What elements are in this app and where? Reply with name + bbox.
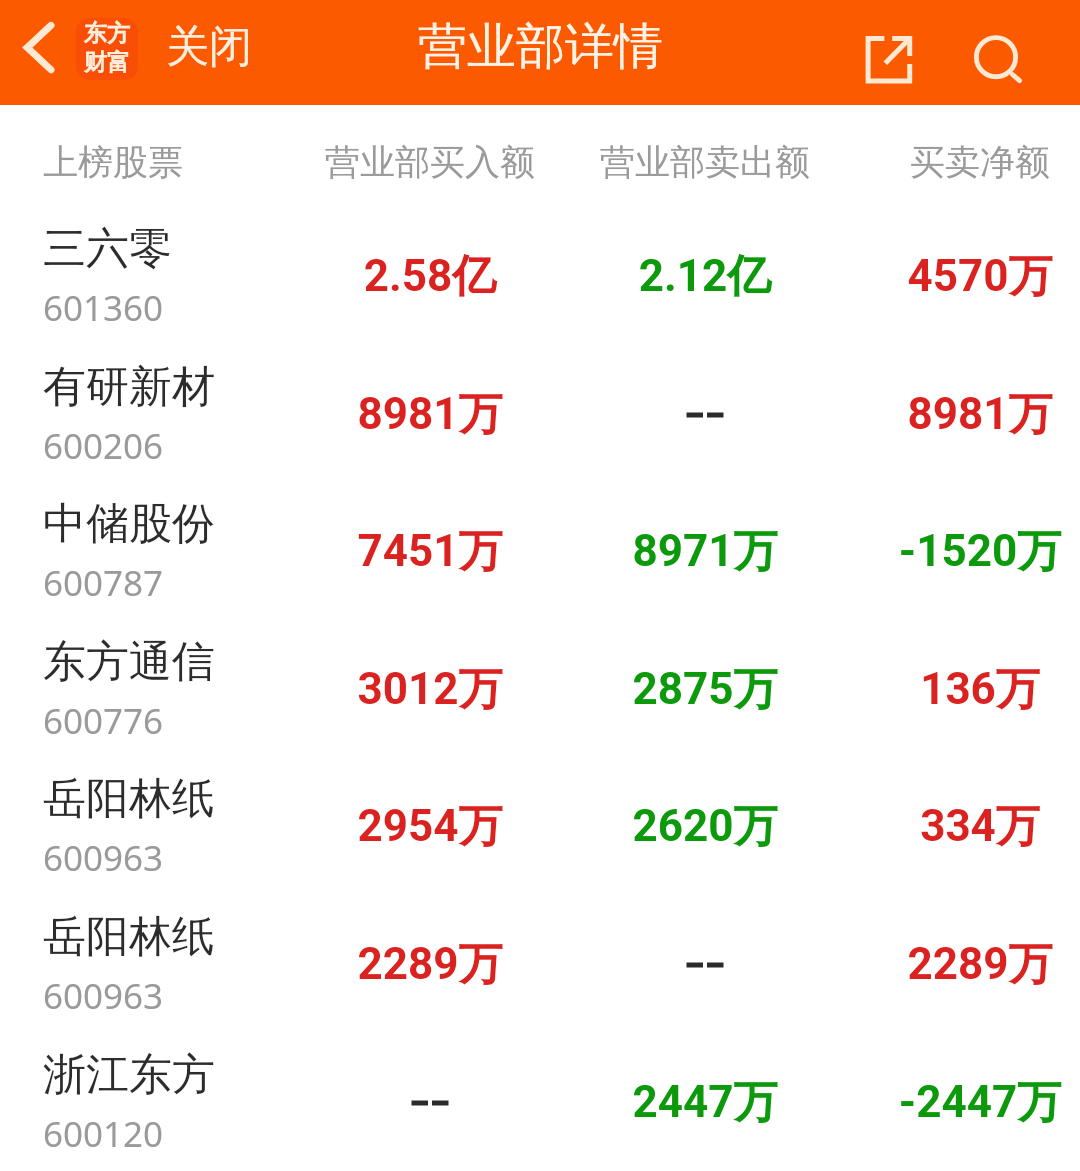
staticText: 上榜股票 [43,140,183,184]
staticText: 岳阳林纸 [43,772,215,826]
button[interactable]: 岳阳林纸 [0,755,1080,892]
staticText: 600963 [43,972,164,1020]
staticText: 买卖净额 [840,140,1080,184]
button[interactable]: Share [852,23,926,96]
button[interactable]: 关闭 [158,14,260,88]
staticText: 岳阳林纸 [43,910,215,964]
button[interactable]: Back [4,12,74,92]
staticText: 营业部买入额 [290,140,570,184]
staticText: 600120 [43,1110,164,1158]
staticText: 334万 [820,799,1080,854]
staticText: -2447万 [820,1075,1080,1130]
staticText: 2447万 [545,1075,865,1130]
staticText: 136万 [820,662,1080,717]
staticText: 营业部卖出额 [565,140,845,184]
staticText: 2.58亿 [270,249,590,304]
staticText: 浙江东方 [43,1048,215,1102]
button[interactable]: Search [962,22,1036,96]
staticText: -1520万 [820,524,1080,579]
staticText: 8981万 [270,387,590,442]
staticText: 财富 [84,48,130,77]
staticText: 三六零 [43,222,172,276]
staticText: 600776 [43,697,164,745]
staticText: 关闭 [166,20,252,74]
button[interactable]: 东方通信 [0,618,1080,755]
staticText: 2875万 [545,662,865,717]
staticText: 2620万 [545,799,865,854]
button[interactable]: 有研新材 [0,343,1080,480]
button[interactable]: 中储股份 [0,480,1080,617]
staticText: 601360 [43,284,164,332]
staticText: 3012万 [270,662,590,717]
staticText: 营业部详情 [418,16,663,78]
staticText: 600963 [43,834,164,882]
staticText: 东方通信 [43,635,215,689]
staticText: 2289万 [820,937,1080,992]
staticText: 4570万 [820,249,1080,304]
button[interactable]: 浙江东方 [0,1031,1080,1168]
staticText: 8971万 [545,524,865,579]
button[interactable]: 岳阳林纸 [0,893,1080,1030]
button[interactable]: 三六零 [0,205,1080,342]
staticText: 600787 [43,559,164,607]
staticText: 7451万 [270,524,590,579]
staticText: 600206 [43,422,164,470]
staticText: 2289万 [270,937,590,992]
staticText: 2954万 [270,799,590,854]
staticText: 有研新材 [43,360,215,414]
staticText: 中储股份 [43,497,215,551]
staticText: 东方 [84,19,130,48]
button[interactable]: East Money logo [76,18,138,80]
staticText: 8981万 [820,387,1080,442]
staticText: 2.12亿 [545,249,865,304]
